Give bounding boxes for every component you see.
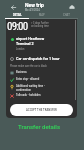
staticText: on booking time xyxy=(31,24,49,27)
staticText: ACCEPT THE TRANSFER xyxy=(26,108,57,112)
button[interactable]: Business xyxy=(10,70,75,76)
staticText: London xyxy=(16,47,25,50)
staticText: Please make sure the car is black xyxy=(10,64,72,67)
button[interactable]: DETAIL xyxy=(5,12,30,18)
staticText: Mo 4/3/2024 xyxy=(25,8,40,11)
staticText: airport Heathrow xyxy=(16,36,45,41)
button[interactable]: Additional waiting time - confirmation xyxy=(10,84,75,93)
button[interactable]: Upload trip xyxy=(67,2,77,12)
button[interactable]: CHAT xyxy=(54,12,78,18)
staticText: 09:00 xyxy=(7,20,28,33)
staticText: > 3 days Further xyxy=(31,21,49,24)
staticText: CHAT xyxy=(63,13,70,17)
staticText: MAP xyxy=(39,13,45,17)
staticText: Business xyxy=(16,70,27,74)
staticText: Tollroads - forbidden xyxy=(16,93,41,97)
button[interactable]: Tollroads - forbidden xyxy=(10,93,75,99)
staticText: Transfer details xyxy=(18,123,60,130)
staticText: Car on-dispatch for 1 hour xyxy=(16,56,60,61)
staticText: Additional waiting time - confirmation xyxy=(16,84,45,92)
staticText: New trip xyxy=(25,2,44,8)
button[interactable]: ACCEPT THE TRANSFER xyxy=(10,104,73,116)
staticText: Extra stop - allowed xyxy=(16,77,40,81)
button[interactable]: MAP xyxy=(30,12,54,18)
staticText: DETAIL xyxy=(13,13,22,17)
button[interactable]: Extra stop - allowed xyxy=(10,77,75,83)
button[interactable]: Back xyxy=(8,2,18,12)
staticText: Terminal 2 xyxy=(16,41,34,46)
button[interactable]: Transfer details xyxy=(16,121,62,132)
